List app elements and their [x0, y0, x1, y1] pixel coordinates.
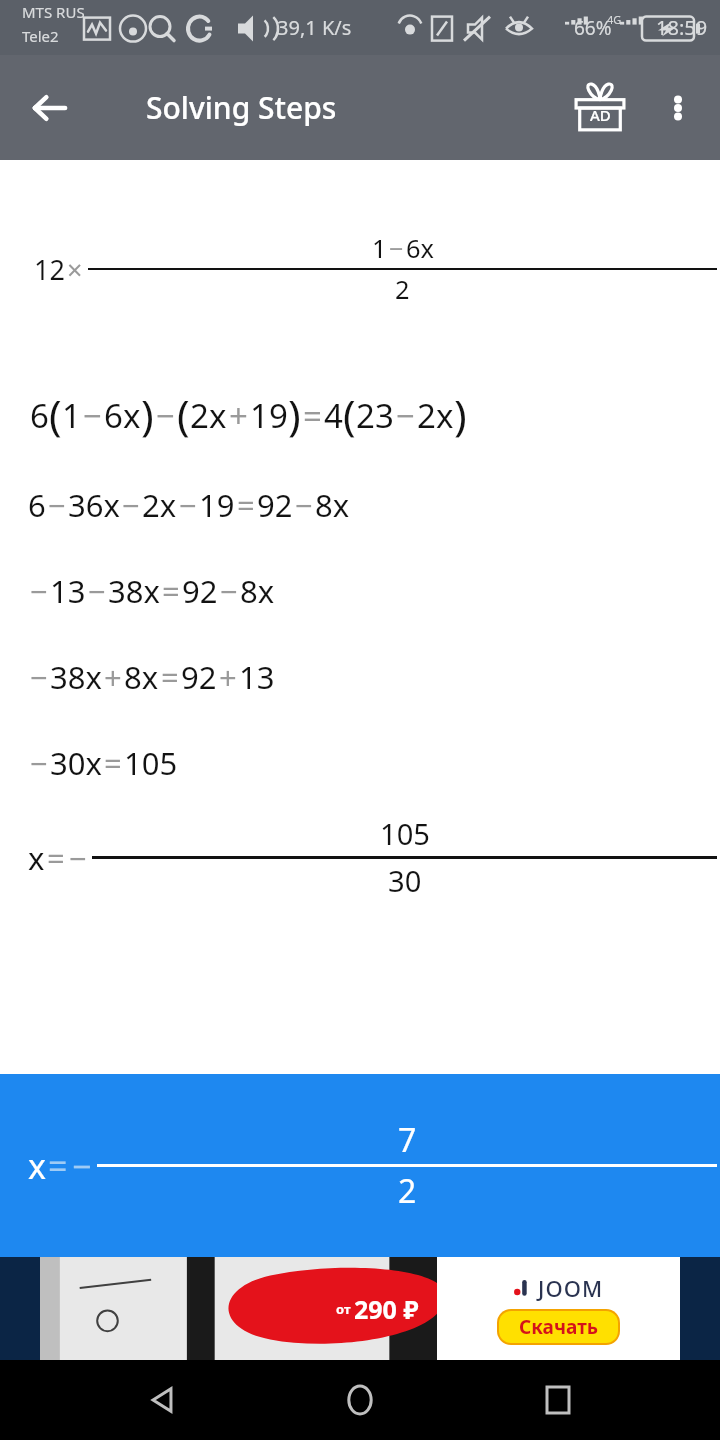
staticText: Скачать [519, 1314, 598, 1340]
staticText: = [161, 656, 179, 698]
button[interactable]: Advertisement [0, 1257, 720, 1360]
staticText: 2 [395, 272, 410, 307]
staticText: × [67, 251, 83, 288]
staticText: − [295, 484, 313, 526]
button[interactable]: Back [126, 1364, 198, 1436]
staticText: − [83, 393, 102, 438]
staticText: − [122, 484, 140, 526]
staticText: − [30, 570, 48, 612]
staticText: − [30, 742, 48, 784]
staticText: − [69, 837, 87, 879]
button[interactable]: More options [648, 78, 708, 138]
staticText: 38x [108, 570, 160, 612]
staticText: = [48, 1143, 68, 1189]
button[interactable]: Recent apps [522, 1364, 594, 1436]
staticText: от [336, 1300, 354, 1318]
staticText: 6 [28, 484, 46, 526]
staticText: 66% [574, 15, 612, 41]
staticText: 39,1 K/s [277, 14, 352, 41]
button[interactable]: Reward ad [566, 74, 634, 142]
staticText: − [389, 231, 404, 266]
staticText: 290 ₽ [354, 1292, 419, 1326]
staticText: − [179, 484, 197, 526]
staticText: 92 [257, 484, 293, 526]
staticText: JOOM [538, 1273, 604, 1303]
staticText: 2x [142, 484, 177, 526]
staticText: Solving Steps [146, 87, 337, 128]
staticText: ( [343, 386, 356, 444]
staticText: 6 [30, 393, 49, 438]
staticText: ( [49, 386, 62, 444]
staticText: 13 [239, 656, 275, 698]
staticText: 2x [417, 393, 454, 438]
staticText: 13 [50, 570, 86, 612]
staticText: ) [454, 386, 467, 444]
staticText: 2x [190, 393, 227, 438]
staticText: − [88, 570, 106, 612]
staticText: 1 [372, 231, 387, 266]
staticText: − [220, 570, 238, 612]
staticText: − [156, 393, 175, 438]
staticText: 30x [50, 742, 102, 784]
staticText: 30 [388, 861, 422, 901]
staticText: − [30, 656, 48, 698]
button[interactable]: Back [18, 76, 82, 140]
staticText: 2 [398, 1169, 417, 1213]
staticText: 12 [34, 251, 65, 288]
staticText: = [303, 393, 322, 438]
staticText: 38x [50, 656, 102, 698]
staticText: 6x [104, 393, 141, 438]
staticText: − [72, 1143, 92, 1189]
staticText: 7 [398, 1118, 417, 1162]
staticText: + [104, 656, 122, 698]
staticText: MTS RUS [22, 2, 85, 22]
staticText: 23 [356, 393, 394, 438]
staticText: = [162, 570, 180, 612]
staticText: ) [141, 386, 154, 444]
staticText: ( [177, 386, 190, 444]
staticText: 19 [199, 484, 235, 526]
staticText: AD [590, 105, 611, 125]
staticText: − [396, 393, 415, 438]
staticText: 92 [181, 656, 217, 698]
staticText: 4 [324, 393, 343, 438]
staticText: = [47, 837, 65, 879]
staticText: 92 [182, 570, 218, 612]
staticText: ) [288, 386, 301, 444]
staticText: + [219, 656, 237, 698]
staticText: + [229, 393, 248, 438]
staticText: x [28, 837, 45, 879]
staticText: 19 [250, 393, 288, 438]
staticText: Tele2 [22, 26, 59, 46]
button[interactable]: x [0, 1074, 720, 1257]
staticText: 8x [240, 570, 275, 612]
staticText: 105 [124, 742, 178, 784]
staticText: 4G [607, 12, 622, 27]
staticText: 6x [406, 231, 434, 266]
staticText: = [237, 484, 255, 526]
staticText: − [48, 484, 66, 526]
button[interactable]: Home [324, 1364, 396, 1436]
staticText: 36x [68, 484, 120, 526]
staticText: 8x [315, 484, 350, 526]
staticText: 1 [62, 393, 81, 438]
staticText: = [104, 742, 122, 784]
staticText: 105 [380, 814, 430, 854]
staticText: 18:59 [656, 14, 708, 41]
staticText: x [28, 1143, 46, 1189]
staticText: 8x [124, 656, 159, 698]
